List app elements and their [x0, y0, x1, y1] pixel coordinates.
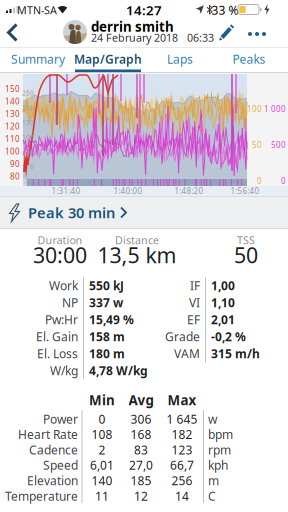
staticText: bpm	[208, 426, 233, 442]
staticText: 14	[175, 488, 189, 504]
staticText: 185	[130, 473, 151, 488]
staticText: VI	[189, 294, 200, 310]
staticText: Work	[49, 277, 78, 293]
staticText: 0	[257, 176, 262, 186]
staticText: 182	[171, 426, 192, 442]
staticText: 180 m	[89, 345, 125, 361]
staticText: 337 w	[89, 294, 123, 310]
staticText: 550 kJ	[89, 277, 124, 293]
staticText: 14:27	[126, 1, 162, 19]
staticText: 150	[22, 118, 34, 127]
button[interactable]: More	[245, 27, 269, 41]
staticText: 168	[130, 426, 151, 442]
staticText: 2	[98, 442, 105, 458]
staticText: 150	[5, 84, 20, 94]
staticText: El. Gain	[36, 328, 78, 344]
staticText: TSS	[237, 233, 255, 247]
staticText: 0	[30, 162, 34, 171]
staticText: 12	[134, 488, 148, 504]
button[interactable]: Peak 30 min	[0, 196, 288, 229]
staticText: EF	[187, 311, 200, 327]
staticText: 306	[130, 411, 151, 427]
staticText: w	[208, 411, 217, 427]
staticText: 315 m/h	[211, 345, 260, 361]
staticText: Duration	[37, 233, 82, 247]
staticText: 100	[247, 104, 262, 114]
staticText: 1,00	[211, 277, 235, 293]
staticText: 200	[22, 103, 34, 112]
staticText: Avg	[128, 391, 153, 409]
staticText: 1 645	[166, 411, 197, 427]
staticText: Laps	[167, 51, 193, 67]
staticText: C	[208, 488, 216, 504]
staticText: VAM	[174, 345, 200, 361]
staticText: 80	[10, 171, 20, 182]
button[interactable]: Edit	[217, 23, 237, 42]
staticText: -50	[24, 177, 34, 186]
staticText: 11	[95, 488, 109, 504]
staticText: 30:00	[33, 241, 87, 269]
staticText: 1 000	[264, 104, 286, 114]
staticText: NP	[62, 294, 78, 310]
staticText: Min	[89, 391, 115, 409]
staticText: 256	[171, 473, 192, 488]
staticText: 123	[171, 442, 192, 458]
staticText: 27,0	[129, 457, 153, 473]
staticText: 140	[5, 96, 20, 107]
staticText: 110	[5, 134, 20, 144]
staticText: Max	[167, 391, 196, 409]
button[interactable]: Back	[1, 20, 25, 47]
staticText: 1:40:00	[113, 186, 142, 196]
staticText: Power	[43, 411, 78, 427]
button[interactable]: Laps	[155, 47, 205, 71]
staticText: 15,49 %	[89, 311, 134, 327]
staticText: Peaks	[232, 51, 265, 67]
staticText: 158 m	[89, 328, 125, 344]
staticText: Heart Rate	[18, 426, 78, 442]
staticText: 2,01	[211, 311, 235, 327]
staticText: rpm	[208, 442, 231, 458]
staticText: 50	[234, 241, 258, 269]
staticText: 24 February 2018 06:33	[91, 30, 214, 45]
button[interactable]: Map/Graph	[68, 47, 148, 71]
staticText: Peak 30 min	[28, 203, 115, 222]
staticText: Elevation	[27, 473, 78, 488]
staticText: m	[208, 473, 219, 488]
staticText: 6,01	[90, 457, 114, 473]
staticText: 250	[22, 89, 34, 97]
staticText: -0,2 %	[211, 328, 246, 344]
staticText: 500	[271, 140, 286, 150]
staticText: 4,78 W/kg	[89, 362, 148, 378]
staticText: 90	[10, 159, 20, 169]
staticText: 1:48:20	[174, 186, 203, 196]
staticText: W/kg	[50, 362, 78, 378]
staticText: 83	[134, 442, 148, 458]
staticText: kph	[208, 457, 228, 473]
staticText: 1,10	[211, 294, 235, 310]
staticText: IF	[190, 277, 200, 293]
staticText: 100	[22, 133, 34, 142]
staticText: Temperature	[5, 488, 78, 504]
staticText: 1:31:40	[51, 186, 80, 196]
staticText: 50	[252, 140, 262, 150]
staticText: Summary	[11, 51, 65, 67]
button[interactable]: Summary	[5, 47, 71, 71]
staticText: Distance	[115, 233, 159, 247]
staticText: 50	[26, 147, 34, 156]
staticText: derrin smith	[91, 18, 174, 35]
staticText: 100	[5, 146, 20, 157]
staticText: 66,7	[170, 457, 194, 473]
staticText: 0	[98, 411, 105, 427]
staticText: Grade	[165, 328, 200, 344]
staticText: 140	[91, 473, 112, 488]
button[interactable]: Peaks	[224, 47, 274, 71]
staticText: 130	[5, 109, 20, 119]
staticText: Cadence	[29, 442, 78, 458]
staticText: Map/Graph	[74, 51, 142, 67]
staticText: 13,5 km	[97, 241, 176, 269]
staticText: MTN-SA	[17, 3, 57, 17]
staticText: 1:56:40	[230, 186, 259, 196]
staticText: 33 %	[211, 2, 238, 18]
staticText: 0	[281, 176, 286, 186]
staticText: Speed	[43, 457, 78, 473]
